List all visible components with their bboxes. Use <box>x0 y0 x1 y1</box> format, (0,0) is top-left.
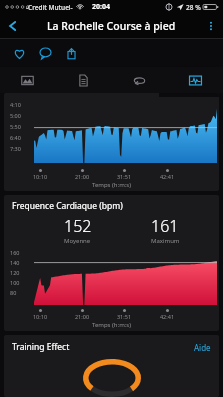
button[interactable]: Map <box>0 67 55 93</box>
button[interactable]: Share <box>60 42 82 64</box>
button[interactable]: Training Effect <box>4 335 219 397</box>
staticText: 20:04 <box>92 2 110 12</box>
button[interactable]: Charts <box>167 67 223 93</box>
staticText: La Rochelle Course à pied <box>47 19 176 33</box>
staticText: 42:41 <box>154 313 180 320</box>
button[interactable]: 4:10 <box>4 93 219 191</box>
staticText: Aide <box>194 342 211 353</box>
staticText: 31:51 <box>111 313 137 320</box>
button[interactable]: Comment <box>34 42 56 64</box>
staticText: Training Effect <box>12 341 70 353</box>
button[interactable]: Back <box>0 14 26 38</box>
button[interactable]: More options <box>199 14 223 38</box>
button[interactable]: Frequence Cardiaque (bpm) <box>4 195 219 331</box>
staticText: 28 % <box>186 3 201 12</box>
staticText: 5:50 <box>10 123 21 130</box>
button[interactable]: Like <box>8 42 30 64</box>
staticText: 7:30 <box>10 145 21 152</box>
staticText: 4:10 <box>10 101 21 108</box>
staticText: Frequence Cardiaque (bpm) <box>12 200 123 212</box>
staticText: 152 <box>64 215 92 237</box>
staticText: 21:00 <box>69 313 95 320</box>
staticText: Maximum <box>151 237 180 245</box>
staticText: 140 <box>10 259 20 266</box>
staticText: Moyenne <box>64 237 91 245</box>
staticText: 31:51 <box>111 173 137 180</box>
staticText: 80 <box>10 289 17 296</box>
staticText: Temps (h:m:s) <box>4 321 219 329</box>
staticText: 10:10 <box>27 173 53 180</box>
staticText: 6:40 <box>10 134 21 141</box>
staticText: 21:00 <box>69 173 95 180</box>
button[interactable]: Aide <box>194 342 211 353</box>
staticText: 10:10 <box>27 313 53 320</box>
staticText: 120 <box>10 269 20 276</box>
button[interactable]: Details <box>55 67 111 93</box>
staticText: Temps (h:m:s) <box>4 181 219 189</box>
staticText: 42:41 <box>154 173 180 180</box>
staticText: 100 <box>10 279 20 286</box>
button[interactable]: Laps <box>111 67 167 93</box>
staticText: 160 <box>10 249 20 256</box>
staticText: 5:00 <box>10 112 21 119</box>
staticText: -Credit Mutuel- <box>26 3 73 12</box>
staticText: 161 <box>151 215 179 237</box>
